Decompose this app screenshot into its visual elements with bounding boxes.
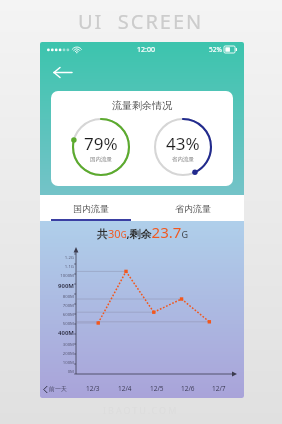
staticText: UI SCREEN <box>78 8 204 35</box>
staticText: 1.2G <box>40 254 74 260</box>
staticText: 43% <box>166 132 200 155</box>
staticText: 省内流量 <box>172 156 194 163</box>
staticText: 52% <box>209 45 222 54</box>
staticText: 12:00 <box>137 45 155 55</box>
staticText: 1.1G <box>40 263 74 269</box>
staticText: 前一天 <box>49 385 67 393</box>
staticText: 0M <box>40 368 74 374</box>
staticText: 100M <box>40 359 74 365</box>
staticText: 12/3 <box>86 384 100 393</box>
staticText: 700M <box>40 302 74 308</box>
staticText: 省内流量 <box>175 203 211 214</box>
staticText: 12/5 <box>150 384 164 393</box>
staticText: 12/6 <box>181 384 195 393</box>
staticText: 200M <box>40 350 74 356</box>
staticText: 流量剩余情况 <box>112 99 172 112</box>
button[interactable]: 省内流量 <box>142 195 244 221</box>
staticText: 12/4 <box>118 384 132 393</box>
staticText: 500M <box>40 320 74 326</box>
staticText: 1000M <box>40 272 74 278</box>
button[interactable]: 国内流量 <box>40 195 142 221</box>
staticText: 400M <box>40 329 74 337</box>
staticText: 国内流量 <box>73 203 109 214</box>
button[interactable]: 前一天 <box>43 385 77 393</box>
staticText: 300M <box>40 341 74 347</box>
staticText: 600M <box>40 311 74 317</box>
staticText: 900M <box>40 282 74 290</box>
staticText: 共30G,剩余23.7G <box>97 222 188 242</box>
staticText: 国内流量 <box>90 156 112 163</box>
staticText: 12/7 <box>212 384 226 393</box>
button[interactable]: Back <box>46 59 78 85</box>
staticText: 79% <box>84 132 118 155</box>
button[interactable]: 流量剩余情况 <box>51 91 233 186</box>
staticText: 800M <box>40 293 74 299</box>
